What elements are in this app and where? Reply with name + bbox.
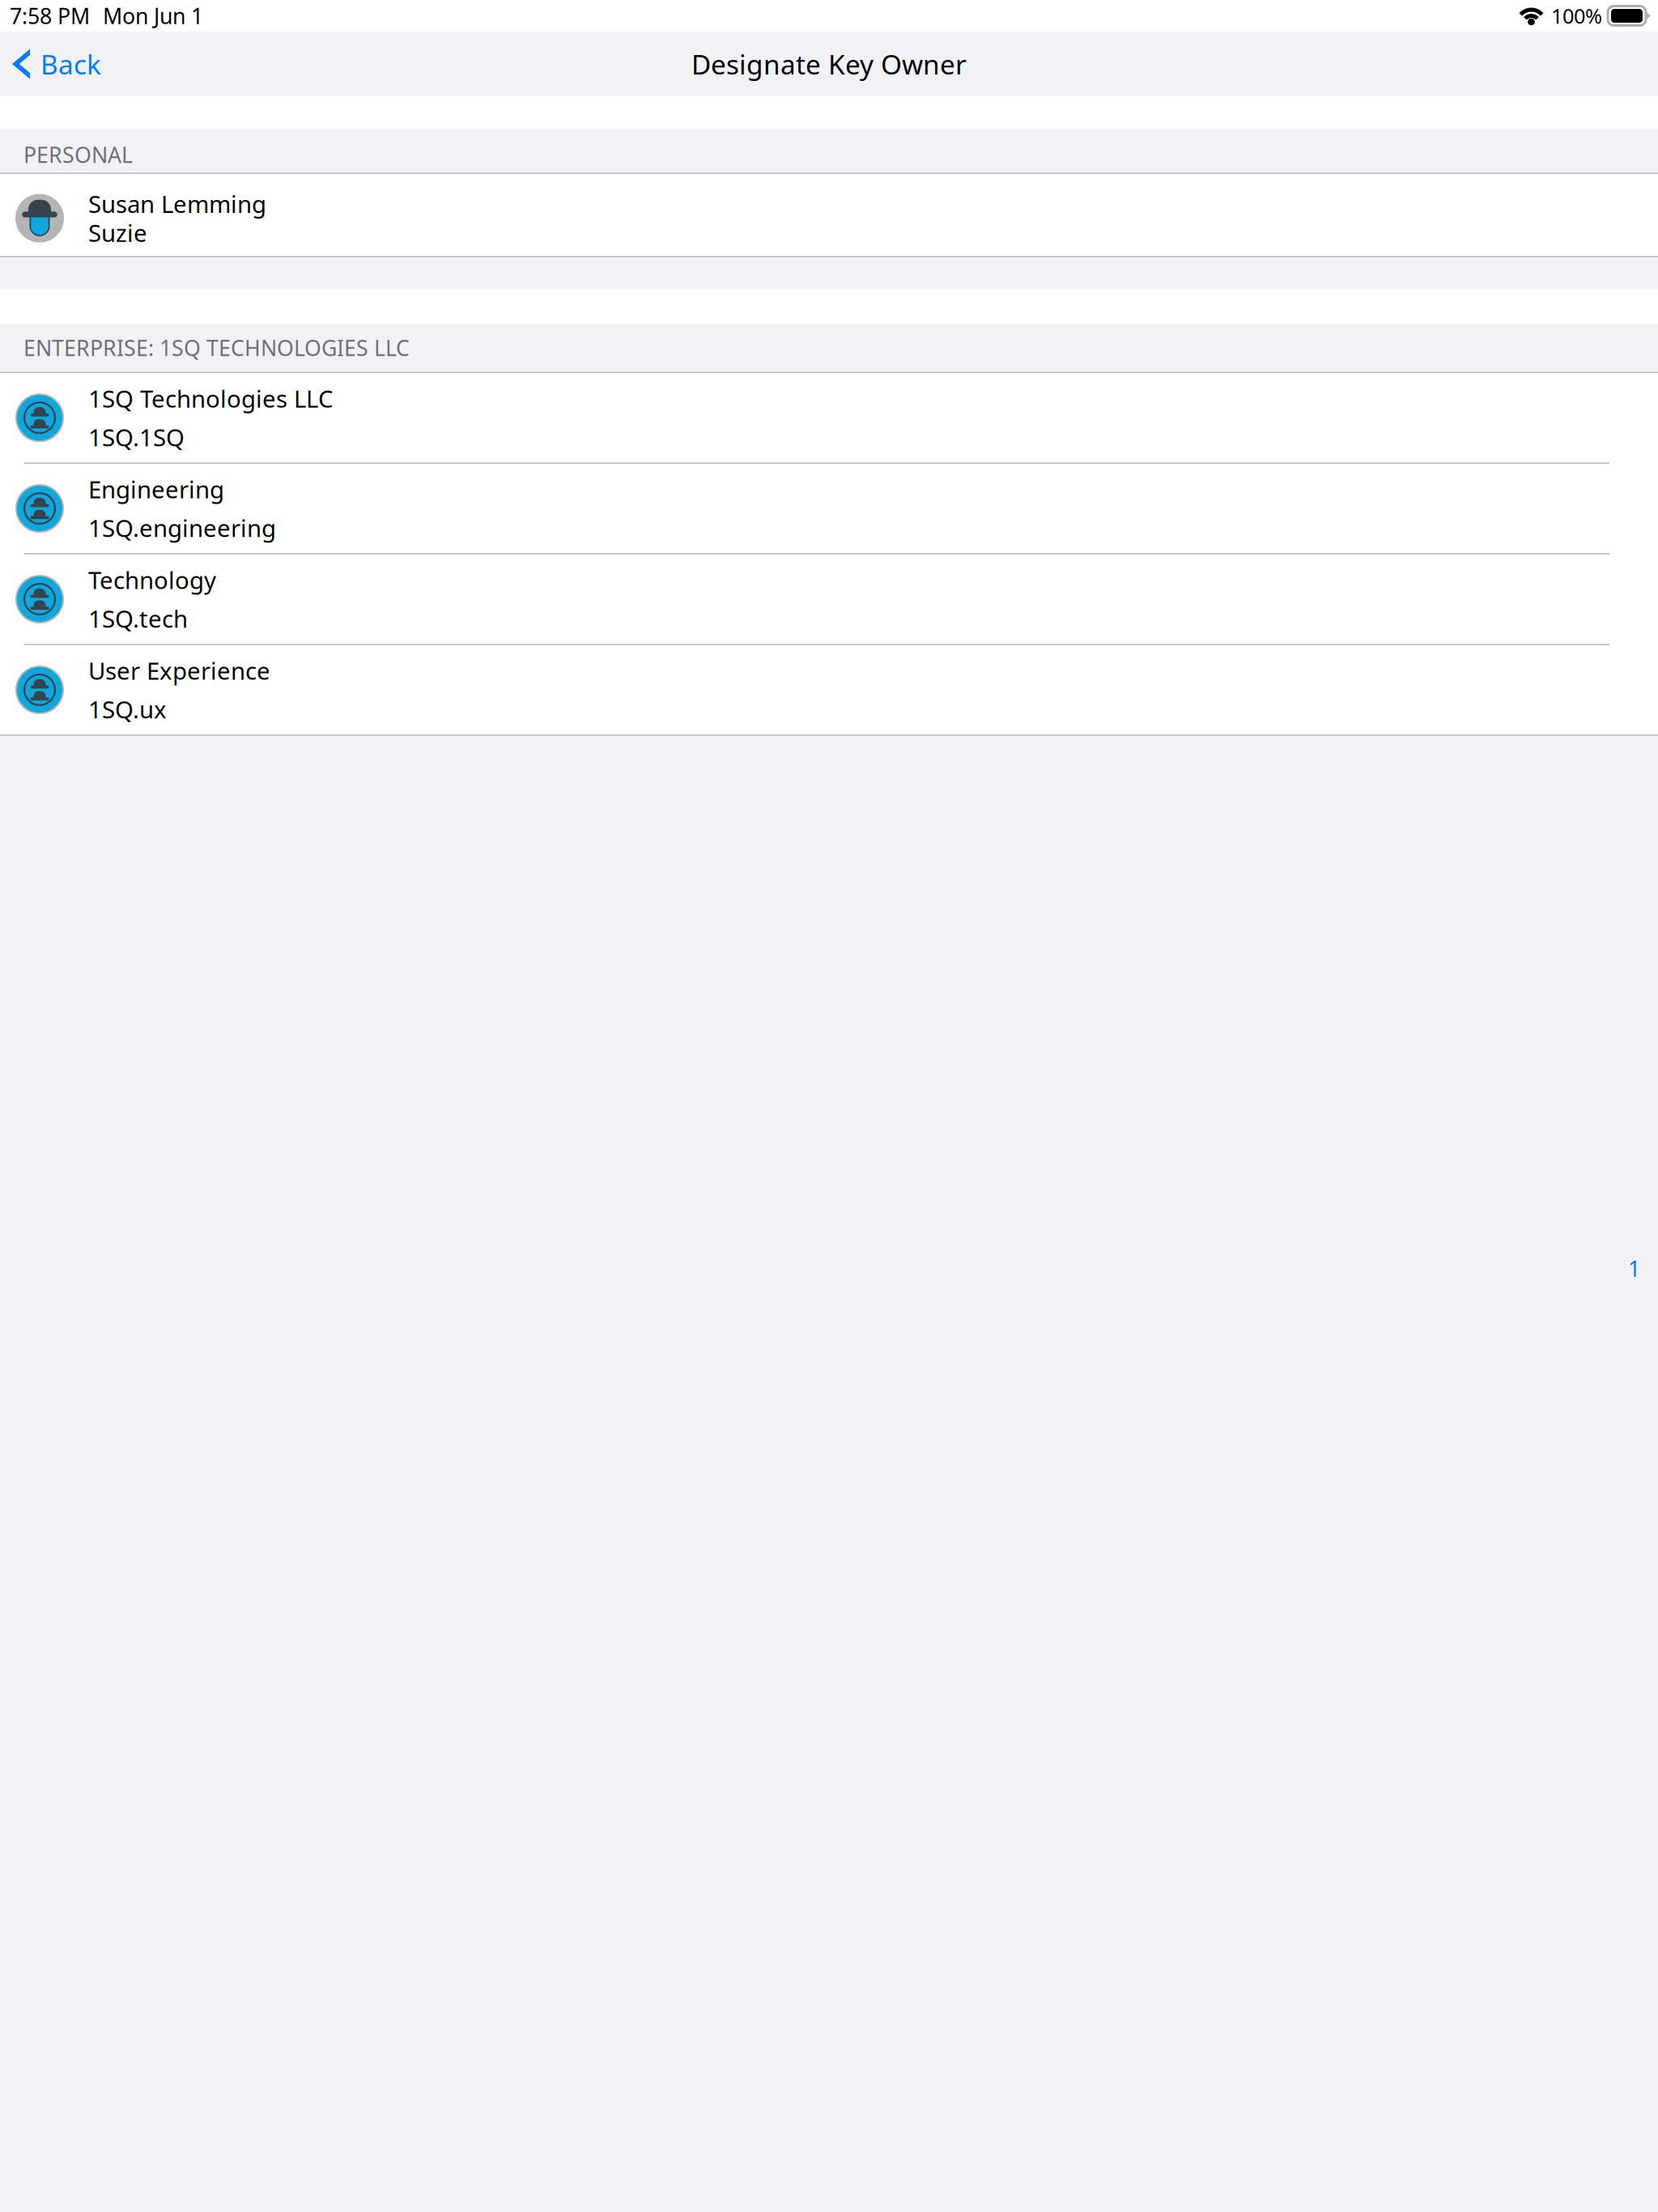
button[interactable]: Back [0,32,114,96]
button[interactable]: Engineering [0,464,1658,553]
staticText: Technology [88,564,216,596]
button[interactable]: User Experience [0,645,1658,734]
staticText: User Experience [88,655,270,686]
staticText: 1SQ.engineering [88,512,276,544]
staticText: 1 [1628,1254,1640,1283]
staticText: Susan Lemming [88,188,266,219]
button[interactable]: 1SQ Technologies LLC [0,373,1658,462]
staticText: Designate Key Owner [691,46,967,82]
staticText: PERSONAL [23,140,133,169]
staticText: Suzie [88,217,147,249]
staticText: 100% [1551,2,1602,29]
staticText: Back [40,46,101,82]
staticText: Engineering [88,473,224,505]
staticText: 1SQ.1SQ [88,421,185,453]
button[interactable]: Technology [0,555,1658,644]
staticText: 1SQ.tech [88,603,188,634]
staticText: Mon Jun 1 [103,1,203,30]
staticText: 7:58 PM [10,1,90,30]
button[interactable]: Susan Lemming [0,174,1658,256]
staticText: ENTERPRISE: 1SQ TECHNOLOGIES LLC [23,333,410,362]
staticText: 1SQ Technologies LLC [88,383,334,414]
staticText: 1SQ.ux [88,693,167,725]
